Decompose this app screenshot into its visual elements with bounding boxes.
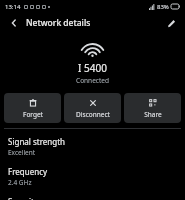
staticText: Excellent — [8, 148, 36, 157]
staticText: 2.4 GHz — [8, 178, 32, 187]
staticText: Frequency — [8, 166, 48, 177]
button[interactable]: Forget — [4, 93, 61, 123]
staticText: Network details — [26, 17, 91, 29]
button[interactable]: Edit — [163, 15, 179, 31]
button[interactable]: Frequency — [0, 166, 185, 187]
button[interactable]: Disconnect — [64, 93, 121, 123]
staticText: Security — [8, 196, 39, 200]
staticText: I 5400 — [78, 61, 107, 75]
button[interactable]: Share — [124, 93, 181, 123]
staticText: Connected — [76, 76, 109, 85]
staticText: Share — [144, 110, 162, 119]
staticText: Signal strength — [8, 136, 66, 147]
staticText: 13:14 — [5, 3, 21, 11]
staticText: Disconnect — [76, 110, 110, 119]
staticText: Forget — [23, 110, 43, 119]
button[interactable]: Security — [0, 196, 185, 200]
button[interactable]: Back — [6, 15, 22, 31]
staticText: 83% — [157, 3, 169, 11]
button[interactable]: Signal strength — [0, 136, 185, 157]
